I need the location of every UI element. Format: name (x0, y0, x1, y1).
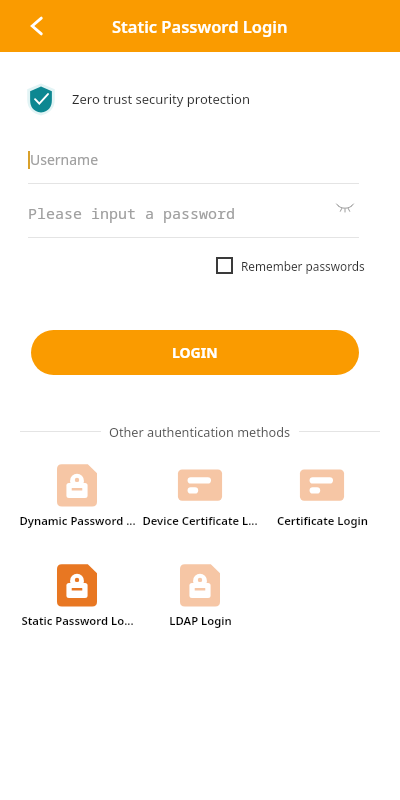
staticText: Zero trust security protection (72, 90, 250, 108)
button[interactable]: Show password (331, 193, 359, 221)
button[interactable]: Certificate Login (260, 463, 384, 528)
staticText: Please input a password (28, 203, 236, 223)
button[interactable]: Remember passwords (216, 257, 365, 274)
staticText: Static Password Lo... (21, 613, 134, 628)
staticText: Certificate Login (277, 513, 368, 528)
button[interactable]: Static Password Lo... (15, 563, 139, 628)
button[interactable]: Dynamic Password ... (15, 463, 139, 528)
staticText: Username (30, 150, 99, 169)
staticText: Other authentication methods (109, 423, 291, 440)
staticText: Device Certificate L... (142, 513, 258, 528)
button[interactable]: Device Certificate L... (138, 463, 262, 528)
staticText: Dynamic Password ... (19, 513, 136, 528)
button[interactable]: LDAP Login (138, 563, 262, 628)
staticText: LDAP Login (169, 613, 232, 628)
staticText: Static Password Login (112, 15, 288, 37)
button[interactable]: Back (19, 8, 55, 44)
button[interactable]: LOGIN (31, 330, 359, 375)
staticText: LOGIN (172, 343, 218, 362)
staticText: Remember passwords (241, 258, 365, 274)
